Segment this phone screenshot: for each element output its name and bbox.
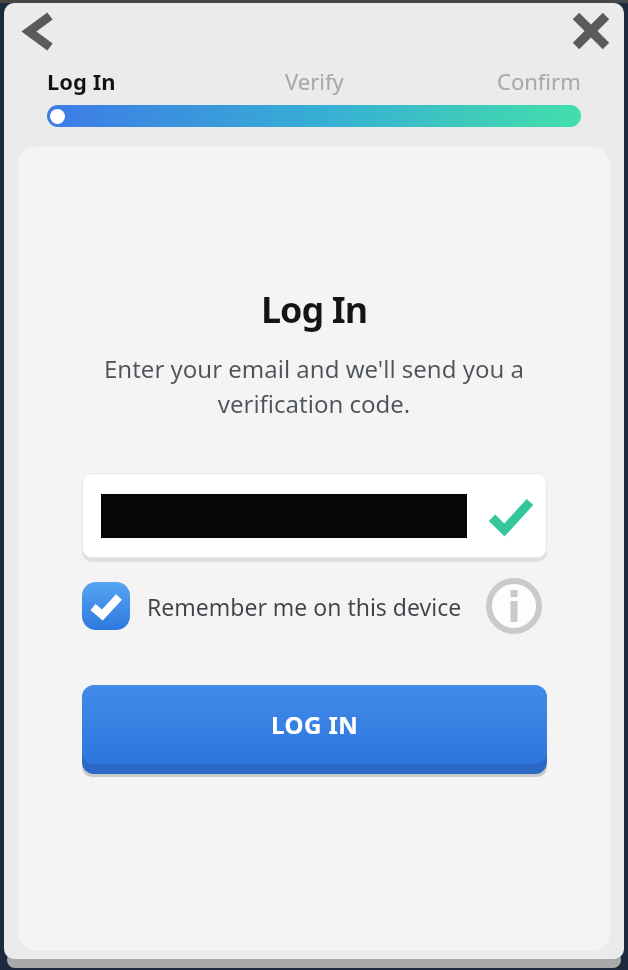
staticText: Log In [47,66,116,96]
button[interactable]: LOG IN [82,685,547,764]
staticText: Log In [261,285,368,334]
staticText: LOG IN [271,708,359,741]
button[interactable] [82,473,547,558]
staticText: Enter your email and we'll send you a ve… [104,352,524,420]
button[interactable] [18,11,58,51]
staticText: Confirm [497,66,581,96]
staticText: Verify [285,66,344,96]
button[interactable]: Remember me on this device [82,582,462,630]
button[interactable] [485,577,543,635]
button[interactable] [570,10,612,52]
staticText: Remember me on this device [147,591,462,622]
